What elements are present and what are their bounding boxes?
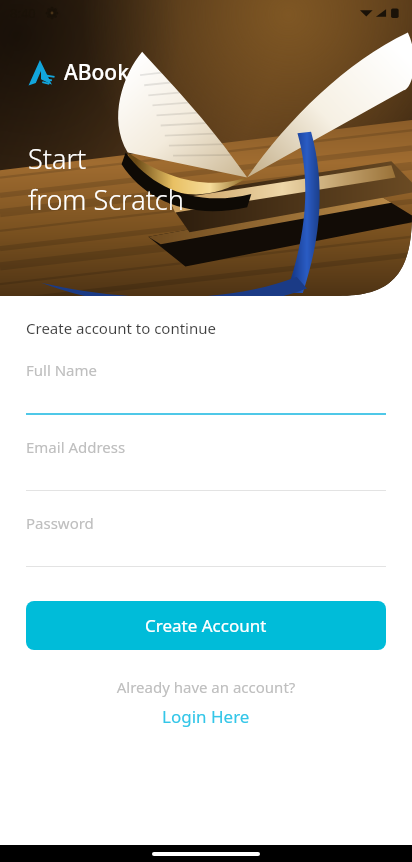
staticText: Login Here [162, 705, 250, 728]
button[interactable]: Login Here [26, 705, 386, 728]
button[interactable]: Full Name [26, 338, 386, 415]
staticText: ABook [64, 58, 129, 87]
staticText: Password [26, 513, 94, 533]
staticText: Create account to continue [26, 318, 216, 338]
staticText: Already have an account? [26, 677, 386, 697]
staticText: from Scratch [28, 181, 184, 218]
button[interactable]: Create Account [26, 601, 386, 650]
staticText: Full Name [26, 360, 97, 380]
button[interactable]: Password [26, 491, 386, 567]
staticText: Email Address [26, 437, 126, 457]
button[interactable]: Email Address [26, 415, 386, 491]
staticText: Create Account [145, 614, 267, 637]
staticText: Start [28, 140, 87, 177]
